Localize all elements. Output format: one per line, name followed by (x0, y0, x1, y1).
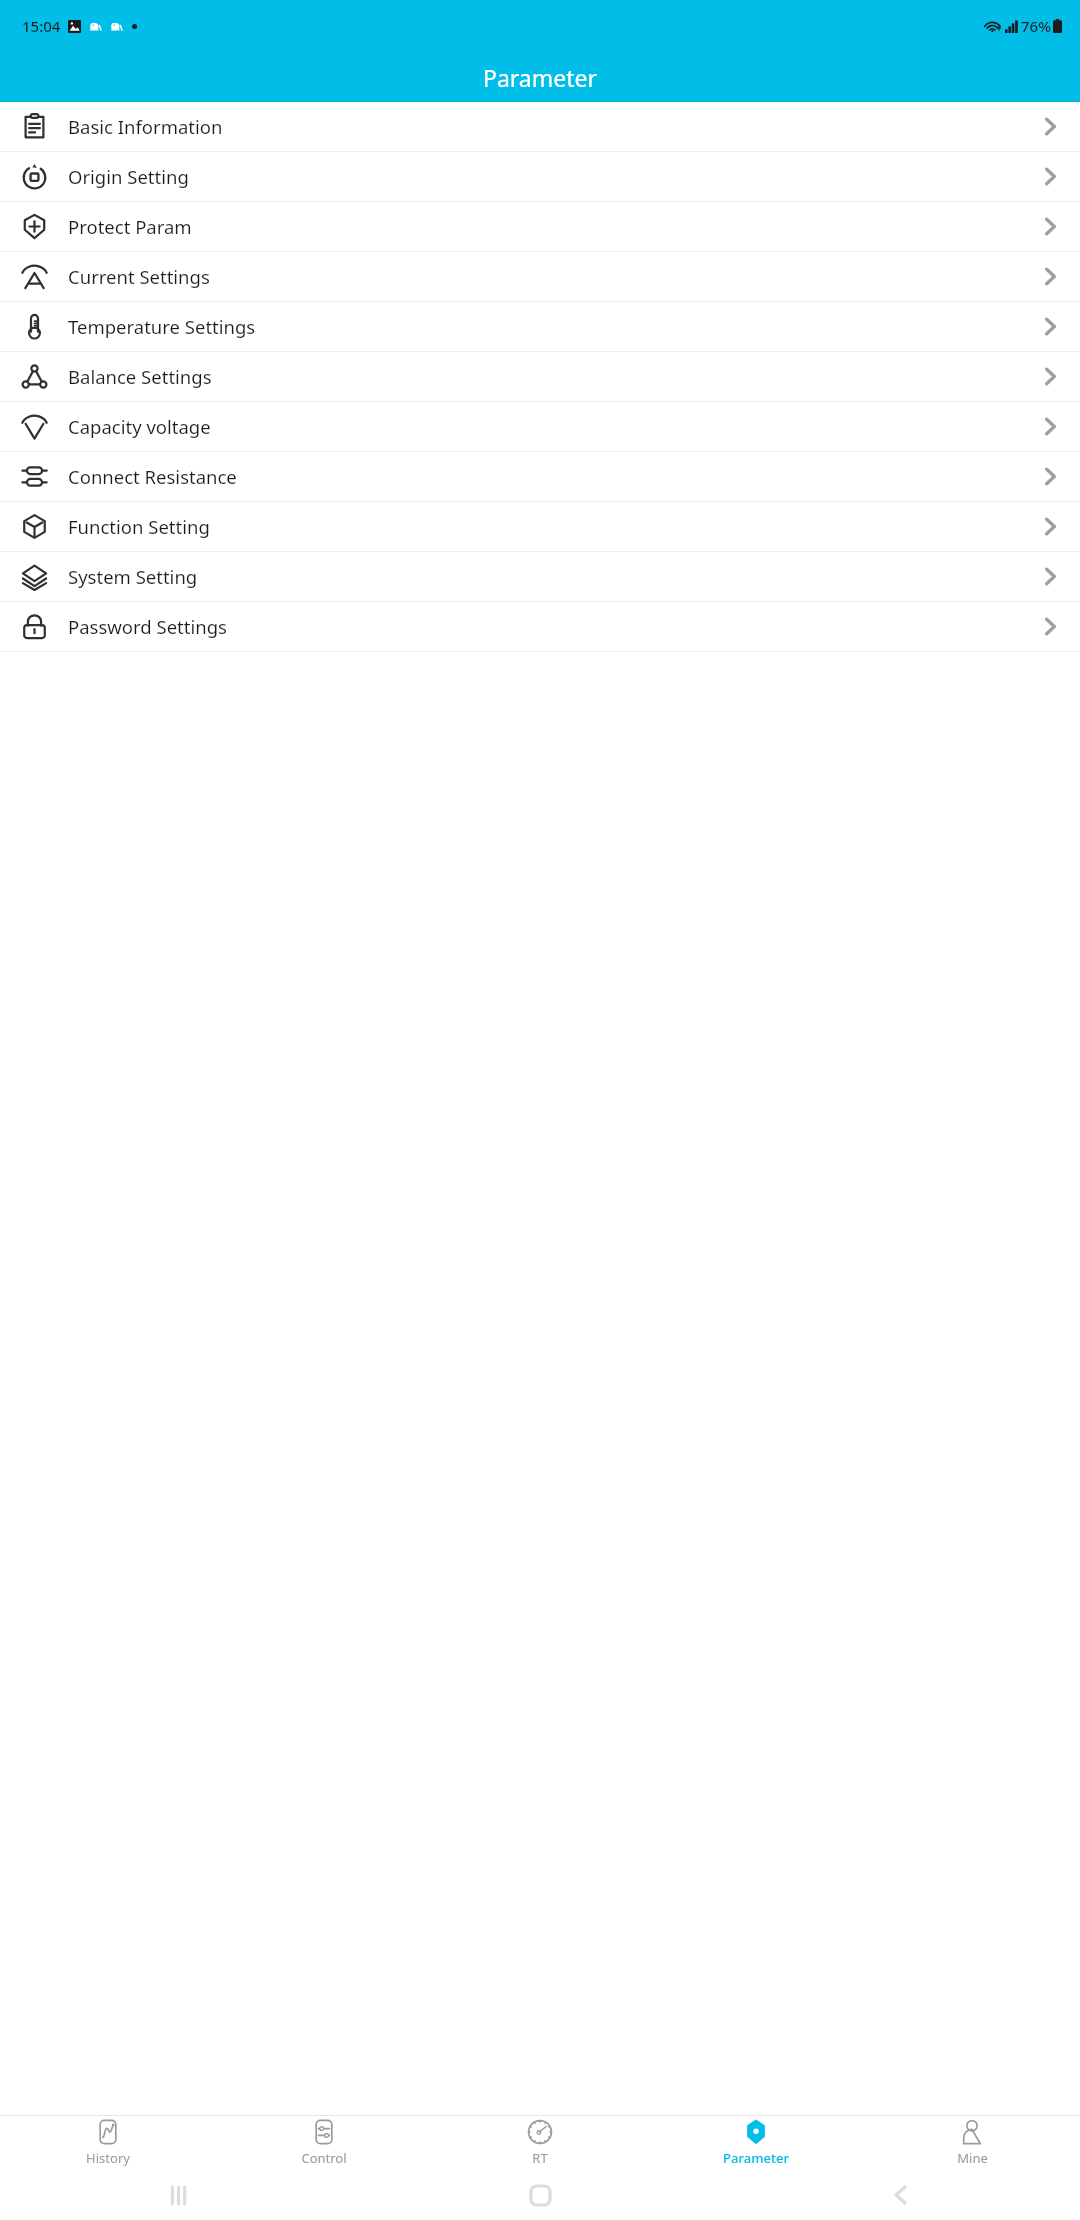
staticText: Capacity voltage (68, 414, 211, 439)
button[interactable]: Origin Setting (0, 152, 1080, 202)
button[interactable]: Control (216, 2116, 432, 2170)
button[interactable]: Function Setting (0, 502, 1080, 552)
staticText: Function Setting (68, 514, 210, 539)
staticText: Parameter (483, 62, 598, 93)
staticText: Protect Param (68, 214, 192, 239)
staticText: Connect Resistance (68, 464, 237, 489)
button[interactable]: History (0, 2116, 216, 2170)
button[interactable]: Current Settings (0, 252, 1080, 302)
staticText: Password Settings (68, 614, 227, 639)
button[interactable]: Capacity voltage (0, 402, 1080, 452)
staticText: Balance Settings (68, 364, 212, 389)
button[interactable]: Balance Settings (0, 352, 1080, 402)
button[interactable]: Password Settings (0, 602, 1080, 652)
staticText: RT (532, 2149, 548, 2167)
staticText: Control (301, 2149, 347, 2167)
button[interactable]: Mine (864, 2116, 1080, 2170)
staticText: Basic Information (68, 114, 223, 139)
button[interactable]: RT (432, 2116, 648, 2170)
button[interactable]: Basic Information (0, 102, 1080, 152)
staticText: 15:04 (22, 16, 61, 36)
button[interactable]: System Setting (0, 552, 1080, 602)
staticText: 76% (1021, 16, 1051, 36)
button[interactable]: Connect Resistance (0, 452, 1080, 502)
button[interactable]: Protect Param (0, 202, 1080, 252)
button[interactable]: Parameter (648, 2116, 864, 2170)
staticText: System Setting (68, 564, 198, 589)
staticText: Origin Setting (68, 164, 189, 189)
staticText: Temperature Settings (68, 314, 256, 339)
staticText: Current Settings (68, 264, 210, 289)
staticText: Parameter (723, 2149, 789, 2167)
staticText: History (86, 2149, 130, 2167)
button[interactable]: Temperature Settings (0, 302, 1080, 352)
staticText: Mine (957, 2149, 988, 2167)
